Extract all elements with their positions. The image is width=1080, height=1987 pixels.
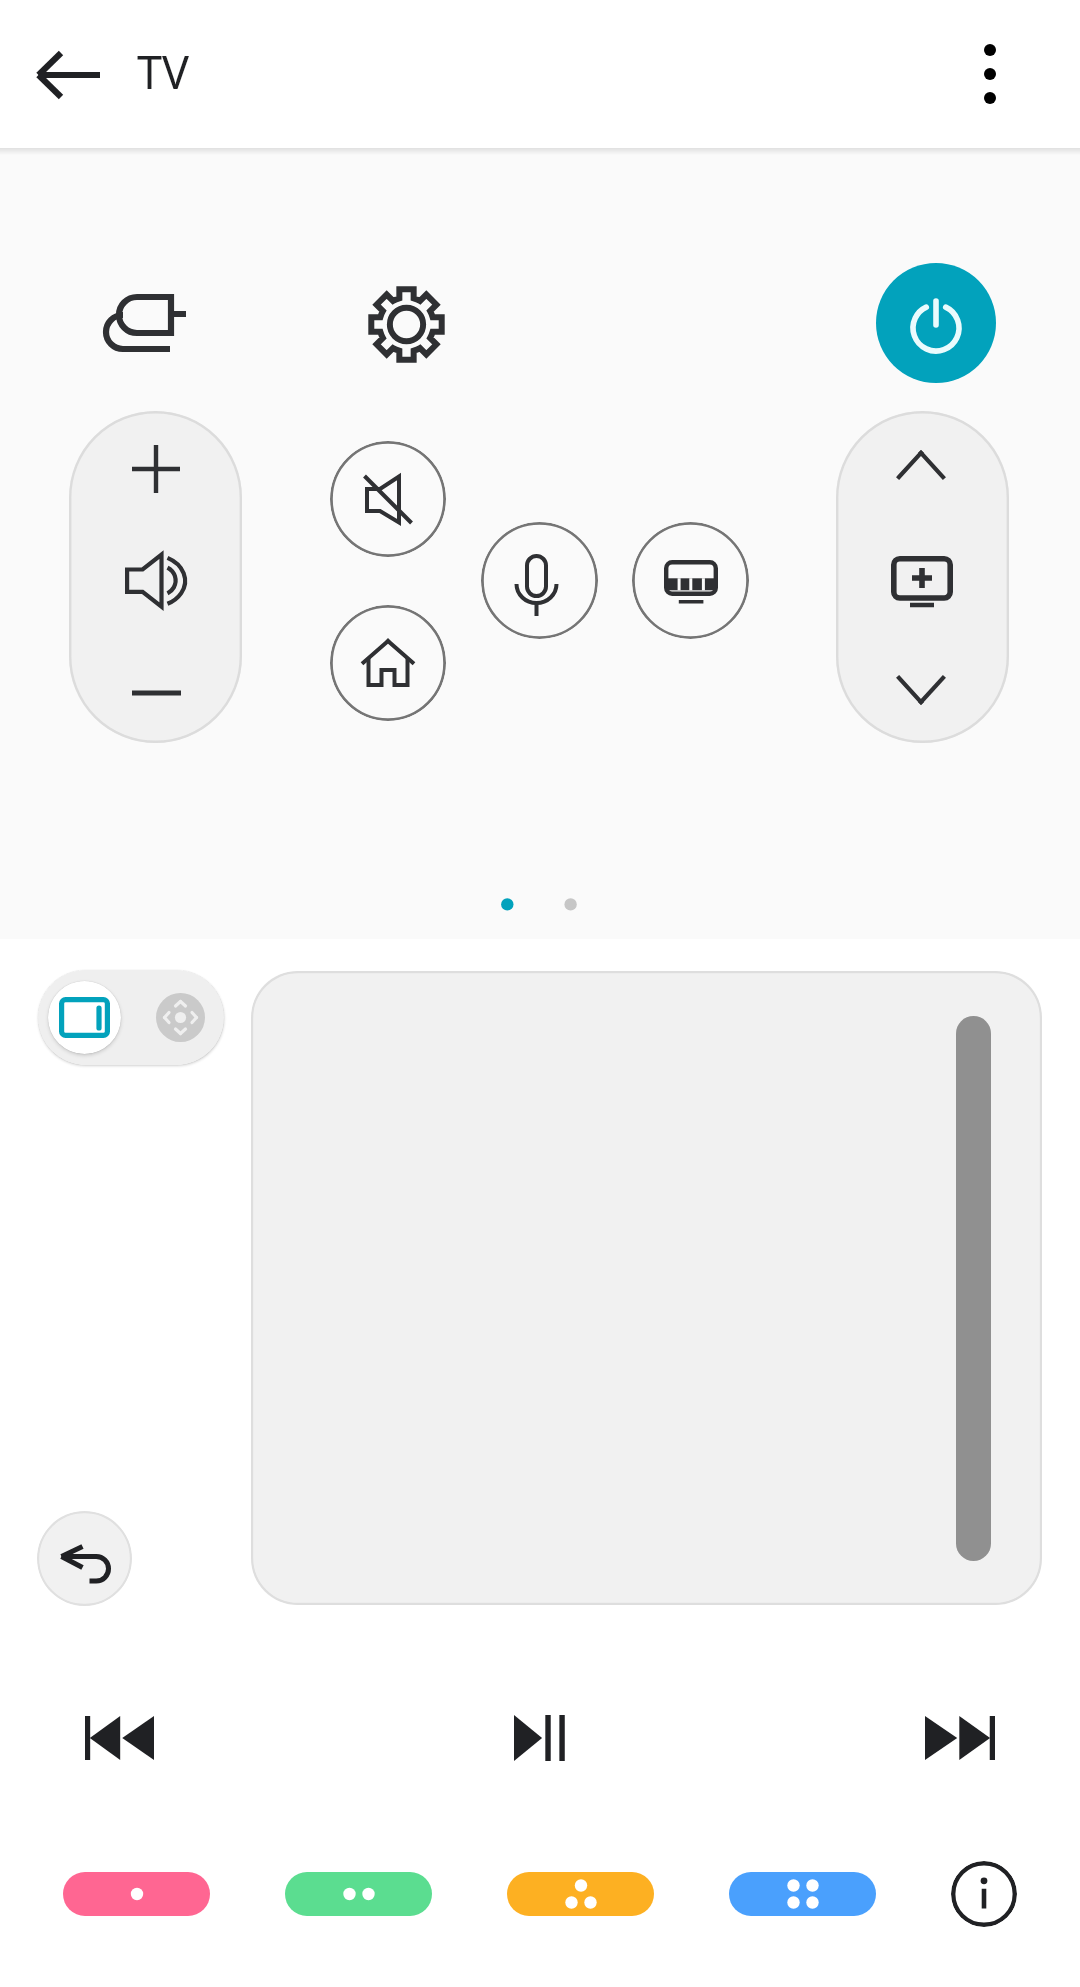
button[interactable]: Channel down <box>875 654 967 726</box>
button[interactable]: Mute <box>104 532 208 630</box>
button[interactable]: Touchpad <box>251 971 1042 1605</box>
button[interactable]: Back <box>37 1511 132 1606</box>
button[interactable]: More options <box>954 38 1026 110</box>
button[interactable]: Home <box>330 605 446 721</box>
button[interactable]: Volume up <box>110 423 202 515</box>
button[interactable]: Channel up <box>875 429 967 501</box>
button[interactable]: Volume down <box>110 647 203 739</box>
button[interactable]: Subtitles <box>632 522 749 639</box>
button[interactable]: Colour key 4 <box>729 1872 876 1916</box>
button[interactable]: Power <box>876 263 996 383</box>
button[interactable]: Previous <box>55 1686 184 1790</box>
button[interactable]: Mute <box>330 441 446 557</box>
button[interactable]: Voice search <box>481 522 598 639</box>
button[interactable]: Colour key 1 <box>63 1872 210 1916</box>
button[interactable]: Settings <box>344 262 469 387</box>
button[interactable]: Colour key 2 <box>285 1872 432 1916</box>
staticText: TV <box>137 41 190 102</box>
button[interactable]: Colour key 3 <box>507 1872 654 1916</box>
button[interactable]: Touchpad or D-pad mode <box>38 970 224 1065</box>
button[interactable]: Info <box>951 1861 1017 1927</box>
button[interactable]: Channel list <box>869 534 975 630</box>
button[interactable]: Back <box>31 38 105 112</box>
button[interactable]: Next <box>895 1686 1025 1790</box>
button[interactable]: Play or pause <box>484 1685 598 1791</box>
button[interactable]: Input source <box>76 268 212 378</box>
